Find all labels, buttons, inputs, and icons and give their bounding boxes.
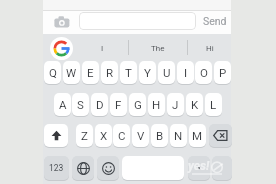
button[interactable]: L bbox=[205, 93, 222, 116]
button[interactable]: G bbox=[129, 93, 146, 116]
staticText: W bbox=[66, 66, 77, 79]
staticText: A bbox=[59, 98, 67, 111]
button[interactable] bbox=[72, 156, 94, 180]
button[interactable]: A bbox=[54, 93, 71, 116]
button[interactable]: V bbox=[132, 124, 149, 147]
button[interactable]: T bbox=[120, 61, 137, 84]
staticText: R bbox=[106, 66, 114, 79]
staticText: F bbox=[115, 98, 122, 111]
staticText: The bbox=[151, 44, 165, 53]
button[interactable] bbox=[44, 124, 68, 147]
staticText: E bbox=[87, 66, 94, 79]
staticText: D bbox=[96, 98, 104, 111]
staticText: Hi bbox=[206, 44, 214, 53]
staticText: 123 bbox=[49, 163, 64, 173]
staticText: V bbox=[137, 129, 145, 142]
button[interactable]: Z bbox=[76, 124, 93, 147]
button[interactable]: Hi bbox=[188, 38, 231, 58]
staticText: M bbox=[192, 129, 203, 142]
button[interactable]: S bbox=[72, 93, 89, 116]
staticText: L bbox=[210, 98, 217, 111]
staticText: Q bbox=[49, 66, 57, 79]
button[interactable]: O bbox=[195, 61, 212, 84]
button[interactable] bbox=[212, 156, 232, 180]
staticText: P bbox=[219, 66, 227, 79]
button[interactable]: Q bbox=[44, 61, 61, 84]
staticText: N bbox=[174, 129, 183, 142]
staticText: Send bbox=[203, 15, 227, 27]
button[interactable]: Y bbox=[139, 61, 156, 84]
button[interactable] bbox=[209, 124, 232, 147]
button[interactable]: N bbox=[170, 124, 187, 147]
button[interactable]: R bbox=[101, 61, 118, 84]
staticText: Y bbox=[144, 66, 151, 79]
button[interactable]: X bbox=[95, 124, 112, 147]
button[interactable]: Send bbox=[200, 12, 230, 30]
button[interactable]: H bbox=[148, 93, 165, 116]
button[interactable] bbox=[122, 156, 184, 180]
button[interactable]: I bbox=[177, 61, 194, 84]
staticText: Z bbox=[81, 129, 88, 142]
button[interactable]: B bbox=[151, 124, 168, 147]
button[interactable] bbox=[79, 12, 196, 30]
button[interactable]: I bbox=[76, 38, 128, 58]
button[interactable]: M bbox=[189, 124, 206, 147]
staticText: C bbox=[118, 129, 126, 142]
button[interactable] bbox=[188, 156, 210, 180]
staticText: J bbox=[172, 98, 179, 111]
button[interactable] bbox=[97, 156, 119, 180]
button[interactable]: J bbox=[167, 93, 184, 116]
staticText: S bbox=[77, 98, 84, 111]
staticText: yes! bbox=[188, 159, 210, 173]
button[interactable] bbox=[54, 15, 70, 28]
button[interactable]: P bbox=[214, 61, 231, 84]
button[interactable]: F bbox=[110, 93, 127, 116]
button[interactable]: E bbox=[82, 61, 99, 84]
button[interactable]: U bbox=[158, 61, 175, 84]
staticText: I bbox=[184, 66, 188, 79]
staticText: G bbox=[134, 98, 142, 111]
button[interactable]: 123 bbox=[44, 156, 69, 180]
button[interactable] bbox=[50, 37, 73, 60]
staticText: X bbox=[100, 129, 108, 142]
button[interactable]: C bbox=[113, 124, 130, 147]
button[interactable]: W bbox=[63, 61, 80, 84]
staticText: O bbox=[200, 66, 208, 79]
staticText: I bbox=[101, 44, 104, 53]
staticText: B bbox=[156, 129, 164, 142]
button[interactable]: D bbox=[91, 93, 108, 116]
staticText: K bbox=[191, 98, 199, 111]
button[interactable]: K bbox=[186, 93, 203, 116]
staticText: T bbox=[125, 66, 132, 79]
staticText: H bbox=[152, 98, 161, 111]
button[interactable]: The bbox=[129, 38, 187, 58]
staticText: U bbox=[163, 66, 171, 79]
